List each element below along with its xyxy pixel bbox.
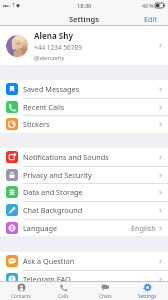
- staticText: Alena Shy: [34, 30, 73, 41]
- staticText: Language: [23, 223, 58, 233]
- staticText: Contacts: [11, 293, 31, 300]
- button[interactable]: Recent Calls: [0, 98, 168, 116]
- staticText: T: [12, 2, 15, 9]
- staticText: 48 %: [142, 2, 154, 9]
- staticText: Recent Calls: [23, 102, 65, 112]
- button[interactable]: Telegram FAQ: [0, 270, 168, 288]
- staticText: Privacy and Security: [23, 170, 92, 180]
- button[interactable]: Contacts: [0, 281, 42, 300]
- button[interactable]: Alena Shy: [0, 26, 168, 65]
- staticText: Chats: [99, 293, 112, 300]
- staticText: Calls: [58, 293, 69, 300]
- button[interactable]: Data and Storage: [0, 183, 168, 201]
- button[interactable]: Calls: [42, 281, 84, 300]
- staticText: Telegram FAQ: [23, 274, 71, 284]
- staticText: Chat Background: [23, 205, 83, 215]
- staticText: Stickers: [23, 119, 50, 129]
- button[interactable]: Saved Messages: [0, 80, 168, 98]
- button[interactable]: Notifications and Sounds: [0, 148, 168, 166]
- staticText: Data and Storage: [23, 187, 83, 197]
- staticText: Settings: [69, 14, 99, 24]
- staticText: Edit: [144, 14, 157, 24]
- button[interactable]: Ask a Question: [0, 252, 168, 270]
- button[interactable]: Privacy and Security: [0, 166, 168, 184]
- button[interactable]: Edit: [138, 12, 168, 26]
- button[interactable]: Settings: [126, 281, 168, 300]
- button[interactable]: Language: [0, 219, 168, 237]
- staticText: Saved Messages: [23, 84, 80, 94]
- staticText: 18:30: [77, 2, 92, 10]
- staticText: English: [131, 223, 156, 233]
- staticText: +44 1234 56789: [34, 43, 82, 52]
- staticText: Settings: [138, 293, 157, 300]
- staticText: Notifications and Sounds: [23, 152, 109, 162]
- button[interactable]: Chats: [84, 281, 126, 300]
- button[interactable]: Stickers: [0, 115, 168, 133]
- button[interactable]: Chat Background: [0, 201, 168, 219]
- staticText: @alenashy: [34, 54, 65, 62]
- staticText: Ask a Question: [23, 256, 75, 266]
